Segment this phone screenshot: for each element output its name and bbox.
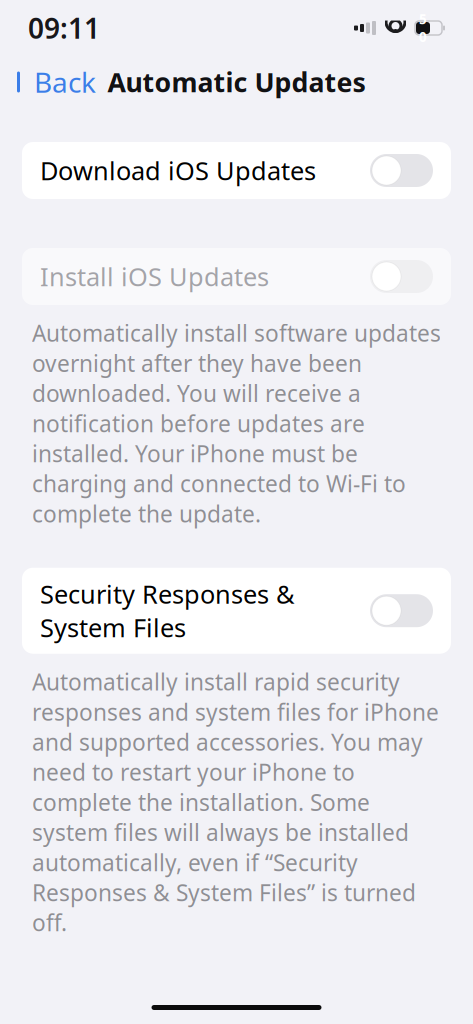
staticText: Back [34,63,96,101]
staticText: 09:11 [28,9,100,47]
staticText: Automatically install software updates o… [32,318,441,529]
button[interactable]: Back [2,60,108,104]
button[interactable]: Install iOS Updates [22,248,451,305]
staticText: Install iOS Updates [40,260,269,293]
button[interactable]: Download iOS Updates [22,142,451,199]
staticText: 50 [419,10,427,46]
staticText: Automatic Updates [107,64,365,100]
staticText: Automatically install rapid security res… [32,667,439,938]
button[interactable]: Security Responses & System Files [22,568,451,654]
staticText: Security Responses & System Files [40,577,295,644]
staticText: Download iOS Updates [40,154,316,187]
